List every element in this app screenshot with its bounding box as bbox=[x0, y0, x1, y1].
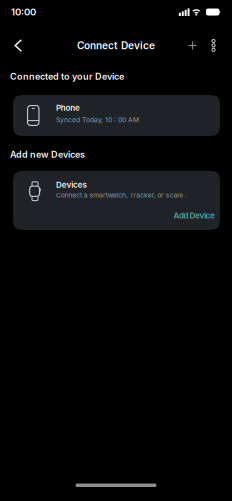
button[interactable]: More options bbox=[197, 39, 232, 52]
staticText: Devices bbox=[56, 180, 86, 190]
staticText: Connect Device bbox=[77, 39, 155, 52]
staticText: Phone bbox=[56, 103, 80, 113]
button[interactable]: Add bbox=[188, 41, 197, 50]
button[interactable]: Back bbox=[0, 39, 22, 52]
staticText: Synced Today, 10 : 00 AM bbox=[56, 116, 139, 124]
staticText: Connect a smartwatch, Tracker, or scale … bbox=[56, 191, 187, 199]
staticText: Add Device bbox=[173, 211, 215, 220]
button[interactable]: Add Device bbox=[173, 211, 215, 220]
staticText: Add new Devices bbox=[10, 149, 85, 160]
staticText: 10:00 bbox=[11, 6, 36, 18]
button[interactable]: Phone bbox=[13, 95, 220, 136]
staticText: Connected to your Device bbox=[10, 71, 124, 82]
